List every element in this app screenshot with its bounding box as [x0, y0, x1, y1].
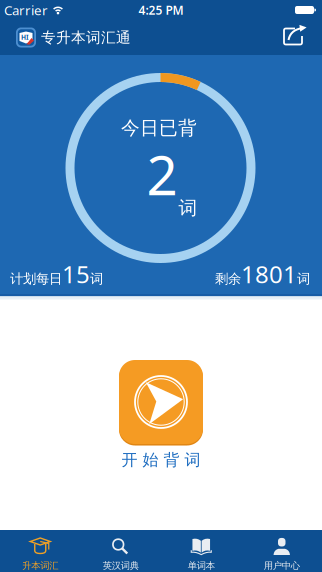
staticText: 15	[62, 258, 90, 290]
staticText: 词	[297, 271, 310, 287]
staticText: 词	[178, 196, 197, 219]
staticText: 用户中心	[264, 560, 300, 571]
staticText: 词	[90, 271, 103, 287]
staticText: Carrier	[4, 1, 48, 19]
button[interactable]: 英汉词典	[80, 530, 161, 572]
button[interactable]: 单词本	[161, 530, 241, 572]
staticText: 单词本	[188, 560, 215, 571]
button[interactable]: 用户中心	[241, 530, 322, 572]
staticText: HI	[21, 33, 29, 42]
staticText: 计划每日	[10, 271, 62, 287]
button[interactable]: 开始背词	[119, 360, 203, 470]
staticText: 2	[146, 138, 177, 210]
staticText: 升本词汇	[22, 560, 58, 571]
staticText: 开始背词	[121, 450, 200, 470]
staticText: 4:25 PM	[138, 2, 183, 18]
staticText: 今日已背	[121, 116, 197, 139]
staticText: 专升本词汇通	[41, 28, 131, 46]
staticText: 剩余	[215, 271, 241, 287]
staticText: 1801	[241, 258, 297, 290]
button[interactable]: 升本词汇	[0, 530, 80, 572]
button[interactable]: Share	[283, 27, 322, 48]
staticText: 英汉词典	[103, 560, 139, 571]
